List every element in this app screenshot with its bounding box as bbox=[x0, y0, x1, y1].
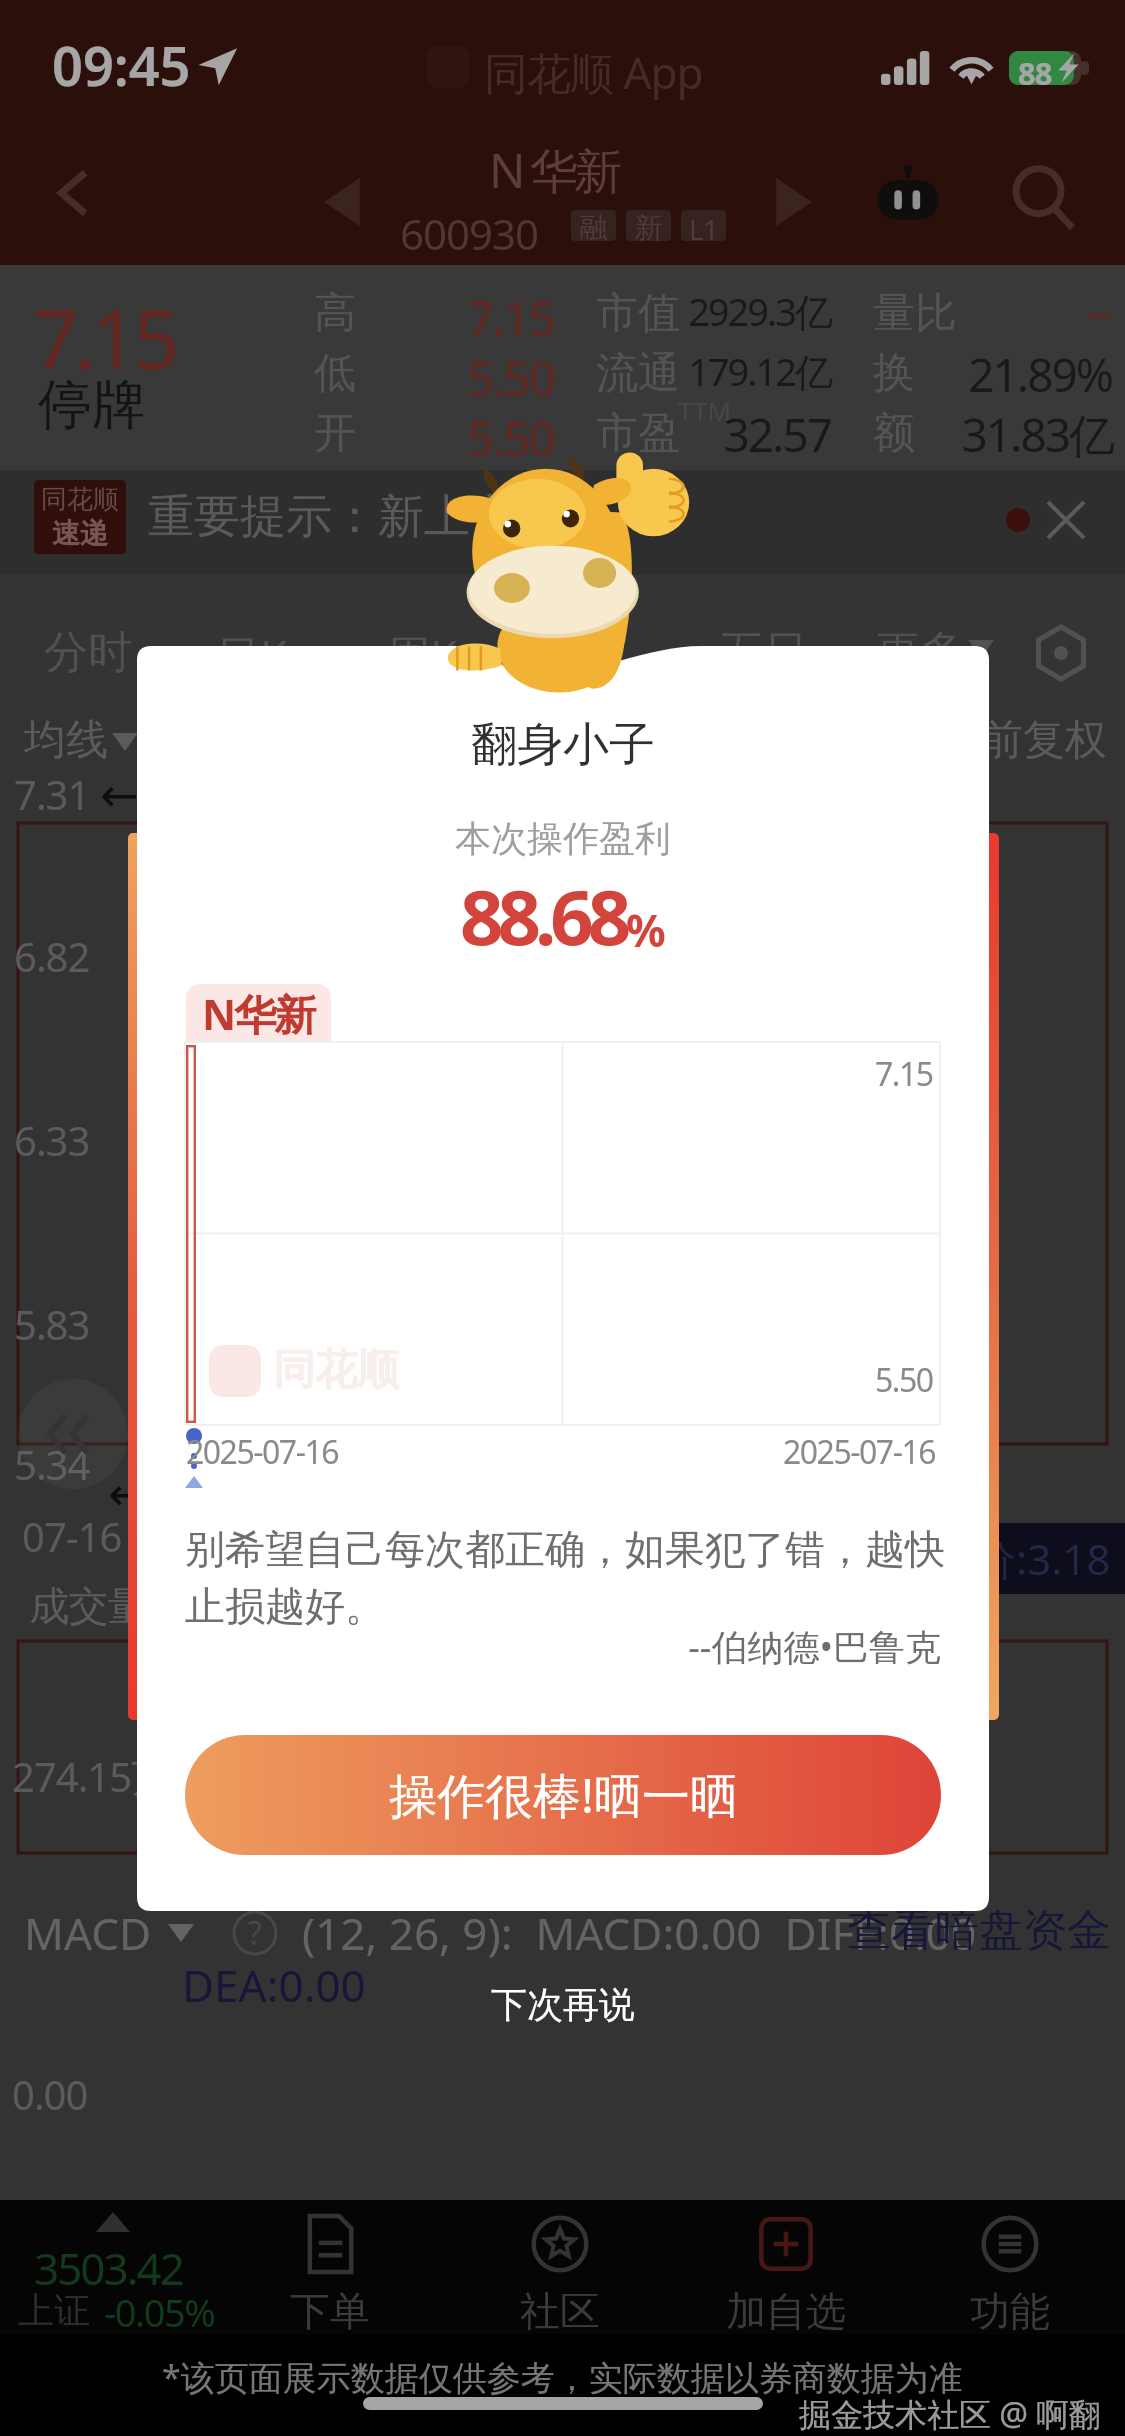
staticText: 社区 bbox=[520, 2286, 600, 2334]
staticText: L1 bbox=[689, 210, 718, 241]
staticText: 2929.3亿 bbox=[0, 285, 831, 337]
staticText: 翻身小子 bbox=[137, 716, 989, 774]
button[interactable]: 下次再说 bbox=[451, 1972, 675, 2037]
staticText: 179.12亿 bbox=[0, 345, 831, 397]
staticText: 5.50 bbox=[875, 1358, 933, 1402]
staticText: 0.00 bbox=[12, 2067, 88, 2121]
staticText: 31.83亿 bbox=[0, 403, 1113, 466]
button[interactable]: Back bbox=[30, 148, 120, 238]
staticText: 速递 bbox=[52, 516, 108, 551]
button[interactable]: AI assistant bbox=[862, 152, 954, 244]
staticText: 下次再说 bbox=[491, 1982, 635, 2027]
staticText: 加自选 bbox=[726, 2286, 846, 2334]
staticText: 7.31 bbox=[14, 767, 90, 821]
staticText: 别希望自己每次都正确，如果犯了错，越快 止损越好。 bbox=[185, 1524, 945, 1631]
staticText: N华新 bbox=[202, 985, 315, 1042]
staticText: *该页面展示数据仅供参考，实际数据以券商数据为准 bbox=[162, 2354, 963, 2400]
staticText: 5.50 bbox=[0, 345, 554, 410]
staticText: 274.15万 bbox=[12, 1749, 171, 1804]
staticText: TTM bbox=[678, 393, 732, 428]
staticText: 市盈 bbox=[596, 407, 680, 460]
staticText: 流通 bbox=[596, 347, 680, 400]
staticText: 3503.42 bbox=[34, 2238, 183, 2298]
staticText: 下单 bbox=[290, 2286, 370, 2334]
staticText: 停牌 bbox=[38, 371, 146, 439]
staticText: 6.82 bbox=[14, 929, 90, 983]
staticText: --伯纳德•巴鲁克 bbox=[137, 1622, 941, 1671]
staticText: 均线 bbox=[24, 714, 108, 767]
staticText: 5.83 bbox=[14, 1297, 90, 1351]
staticText: 掘金技术社区 @ 啊翻 bbox=[799, 2392, 1101, 2436]
staticText: 07-16 bbox=[22, 1509, 122, 1563]
staticText: MACD bbox=[24, 1903, 152, 1963]
button[interactable]: 操作很棒!晒一晒 bbox=[185, 1735, 941, 1855]
staticText: 价:3.18 bbox=[974, 1530, 1111, 1587]
staticText: ←7. bbox=[100, 762, 178, 825]
staticText: 换 bbox=[873, 347, 915, 400]
staticText: 2025-07-16 bbox=[186, 1430, 339, 1474]
staticText: 88 bbox=[1018, 52, 1052, 94]
staticText: ←5. bbox=[108, 1461, 186, 1524]
staticText: 操作很棒!晒一晒 bbox=[389, 1762, 738, 1828]
staticText: 前复权 bbox=[981, 714, 1107, 767]
staticText: 7.15 bbox=[32, 281, 175, 393]
staticText: % bbox=[626, 900, 666, 960]
button[interactable]: 加自选 bbox=[706, 2200, 866, 2334]
staticText: 查看暗盘资金 bbox=[847, 1903, 1111, 1958]
staticText: 开 bbox=[314, 407, 356, 460]
staticText: (12, 26, 9): MACD:0.00 DIFF:0.00 bbox=[302, 1903, 977, 1963]
button[interactable]: Search bbox=[996, 150, 1092, 246]
staticText: 更多 bbox=[876, 625, 964, 680]
staticText: 量比 bbox=[873, 287, 957, 340]
staticText: 7.15 bbox=[875, 1052, 933, 1096]
staticText: 7.15 bbox=[0, 285, 554, 350]
staticText: 融 bbox=[580, 210, 607, 241]
staticText: N 华新 bbox=[489, 137, 618, 203]
button[interactable]: 3503.42 bbox=[4, 2200, 224, 2334]
staticText: 市值 bbox=[596, 287, 680, 340]
staticText: 高 bbox=[314, 287, 356, 340]
button[interactable]: 社区 bbox=[480, 2200, 640, 2334]
staticText: 同花顺 bbox=[41, 483, 119, 516]
staticText: -0.05% bbox=[104, 2286, 215, 2338]
staticText: 周K bbox=[386, 625, 458, 685]
staticText: -- bbox=[0, 279, 1111, 342]
staticText: ? bbox=[248, 1911, 262, 1955]
staticText: 重要提示：新上市 bbox=[148, 488, 516, 546]
button[interactable]: 功能 bbox=[930, 2200, 1090, 2334]
staticText: 88.68 bbox=[460, 864, 626, 968]
staticText: 本次操作盈利 bbox=[137, 816, 989, 861]
staticText: 成交量 bbox=[30, 1581, 147, 1631]
staticText: 5.34 bbox=[14, 1437, 90, 1491]
staticText: 低 bbox=[314, 347, 356, 400]
staticText: 同花顺 bbox=[273, 1344, 399, 1397]
staticText: 09:45 bbox=[52, 28, 191, 102]
staticText: 额 bbox=[873, 407, 915, 460]
staticText: 2025-07-16 bbox=[783, 1430, 936, 1474]
staticText: 上证 bbox=[18, 2288, 90, 2333]
staticText: DEA:0.00 bbox=[182, 1955, 366, 2015]
staticText: 功能 bbox=[970, 2286, 1050, 2334]
staticText: 同花顺 App bbox=[484, 42, 703, 102]
staticText: 600930 bbox=[400, 205, 539, 262]
staticText: 月K bbox=[556, 625, 628, 685]
staticText: 分时 bbox=[44, 625, 132, 680]
staticText: 日K bbox=[216, 625, 288, 685]
button[interactable]: 下单 bbox=[250, 2200, 410, 2334]
staticText: 五日 bbox=[720, 625, 808, 680]
staticText: 6.33 bbox=[14, 1113, 90, 1167]
staticText: 21.89% bbox=[0, 343, 1112, 406]
staticText: 32.57 bbox=[0, 403, 831, 466]
staticText: 新 bbox=[635, 210, 662, 241]
staticText: 5.50 bbox=[0, 405, 554, 470]
